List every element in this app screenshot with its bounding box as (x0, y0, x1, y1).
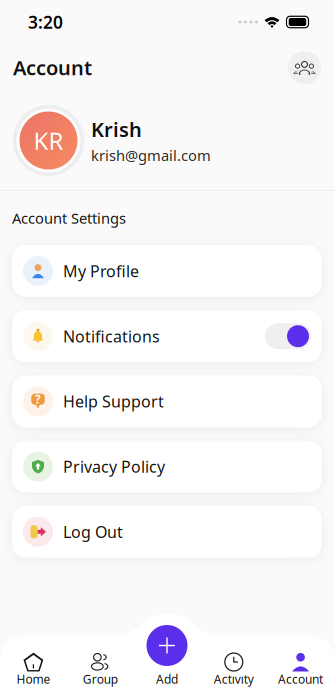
button[interactable]: Log Out (12, 506, 322, 558)
button[interactable]: My Profile (12, 245, 322, 297)
staticText: Notifications (63, 326, 160, 347)
button[interactable]: Group (67, 636, 134, 693)
staticText: Account Settings (12, 208, 126, 228)
button[interactable]: Members (288, 51, 321, 84)
staticText: Home (16, 671, 50, 687)
staticText: KR (33, 125, 63, 156)
staticText: Krish (91, 116, 142, 143)
staticText: Account (278, 671, 323, 687)
button[interactable]: Home (0, 636, 67, 693)
button[interactable]: Activity (200, 636, 267, 693)
staticText: Help Support (63, 391, 164, 412)
button[interactable]: Notifications (12, 310, 322, 362)
staticText: 3:20 (28, 10, 63, 33)
staticText: Group (83, 671, 118, 687)
staticText: Add (156, 671, 178, 687)
staticText: Log Out (63, 521, 123, 542)
button[interactable]: Add (134, 636, 200, 693)
staticText: Privacy Policy (63, 456, 165, 477)
button[interactable]: Privacy Policy (12, 441, 322, 493)
staticText: My Profile (63, 260, 139, 282)
staticText: krish@gmail.com (91, 145, 211, 165)
staticText: Account (13, 54, 92, 81)
button[interactable]: Account (267, 636, 334, 693)
button[interactable]: ? (12, 375, 322, 427)
staticText: Activity (214, 671, 254, 687)
staticText: ? (35, 391, 41, 407)
